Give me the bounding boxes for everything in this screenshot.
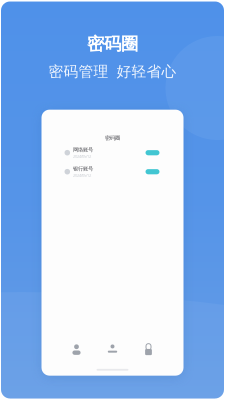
staticText: 银行账号 [73,165,93,172]
staticText: 2024/05/12 [73,173,91,178]
button[interactable]: Security [130,342,166,358]
button[interactable]: Accounts [58,342,94,358]
staticText: 密码圈 [105,135,120,141]
button[interactable]: 网络账号 [41,146,183,160]
button[interactable]: Vault [94,342,130,358]
staticText: 密码管理 好轻省心 [48,63,176,81]
button[interactable]: 银行账号 [41,165,183,179]
staticText: 2024/05/12 [73,154,91,159]
staticText: 密码圈 [87,33,138,55]
staticText: 网络账号 [73,146,93,153]
